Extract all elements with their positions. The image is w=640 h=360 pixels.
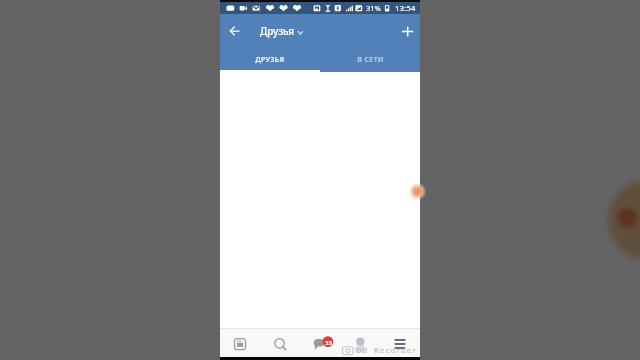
staticText: 31%: [366, 3, 381, 13]
button[interactable]: Друзья: [260, 14, 307, 48]
staticText: DU: [356, 345, 368, 355]
button[interactable]: Add friend: [397, 21, 417, 41]
button[interactable]: Messages: [300, 329, 340, 357]
button[interactable]: Back: [224, 21, 244, 41]
staticText: 33: [325, 339, 332, 347]
button[interactable]: Search: [260, 329, 300, 357]
button[interactable]: Friends: [340, 329, 380, 357]
button[interactable]: ДРУЗЬЯ: [220, 48, 320, 72]
staticText: Recorder: [374, 345, 417, 355]
staticText: Друзья: [260, 25, 295, 38]
button[interactable]: В СЕТИ: [320, 48, 420, 72]
staticText: ДРУЗЬЯ: [255, 55, 285, 65]
button[interactable]: News: [220, 329, 260, 357]
staticText: 13:54: [395, 3, 416, 14]
button[interactable]: Menu: [380, 329, 420, 357]
staticText: В СЕТИ: [357, 55, 384, 65]
